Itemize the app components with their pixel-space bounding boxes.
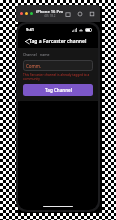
button[interactable]: Settings bbox=[77, 11, 83, 17]
button[interactable]: Back bbox=[22, 37, 31, 46]
staticText: iPhone 16 Pro bbox=[36, 9, 64, 14]
staticText: Channel bbox=[23, 52, 37, 57]
staticText: This Farcaster channel is already tagged… bbox=[23, 73, 93, 81]
staticText: name bbox=[40, 52, 50, 57]
button[interactable] bbox=[25, 12, 28, 15]
staticText: 9:41 bbox=[26, 27, 34, 32]
button[interactable]: Comm. bbox=[23, 60, 93, 71]
staticText: Tag Channel bbox=[45, 87, 72, 93]
button[interactable]: Record bbox=[89, 11, 95, 17]
staticText: iOS 18.2 bbox=[44, 14, 56, 18]
staticText: Comm. bbox=[26, 63, 42, 69]
button[interactable]: Home bbox=[65, 11, 71, 17]
staticText: Tag a Farcaster channel bbox=[29, 38, 87, 45]
button[interactable] bbox=[20, 12, 23, 15]
button[interactable] bbox=[30, 12, 33, 15]
button[interactable]: Tag Channel bbox=[23, 84, 93, 96]
